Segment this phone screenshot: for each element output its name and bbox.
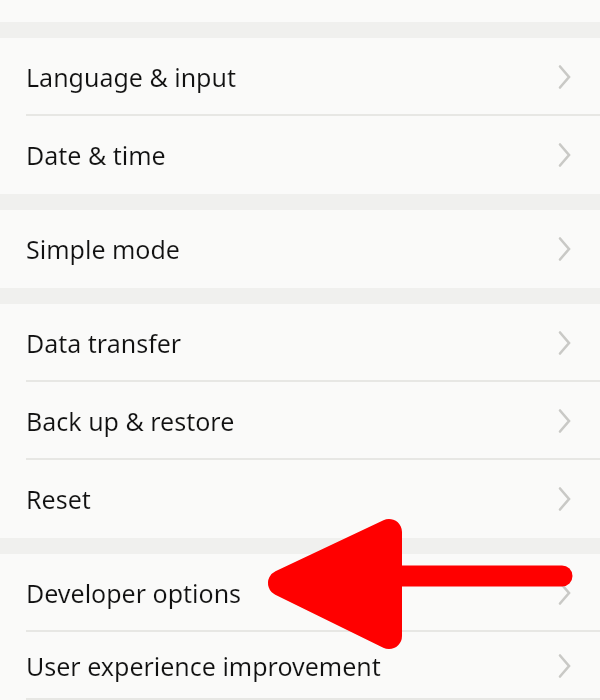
button[interactable]: Reset (0, 460, 600, 538)
staticText: Developer options (26, 576, 242, 610)
staticText: Date & time (26, 138, 166, 172)
button[interactable]: Data transfer (0, 304, 600, 382)
button[interactable]: Back up & restore (0, 382, 600, 460)
staticText: Data transfer (26, 326, 182, 360)
button[interactable]: User experience improvement (0, 632, 600, 700)
button[interactable]: Simple mode (0, 210, 600, 288)
staticText: Simple mode (26, 232, 180, 266)
button[interactable]: Developer options (0, 554, 600, 632)
staticText: User experience improvement (26, 649, 381, 683)
button[interactable]: Date & time (0, 116, 600, 194)
staticText: Back up & restore (26, 404, 235, 438)
other: Annotation arrow pointing to Developer o… (0, 0, 600, 700)
button[interactable]: Language & input (0, 38, 600, 116)
staticText: Language & input (26, 60, 236, 94)
staticText: Reset (26, 482, 91, 516)
